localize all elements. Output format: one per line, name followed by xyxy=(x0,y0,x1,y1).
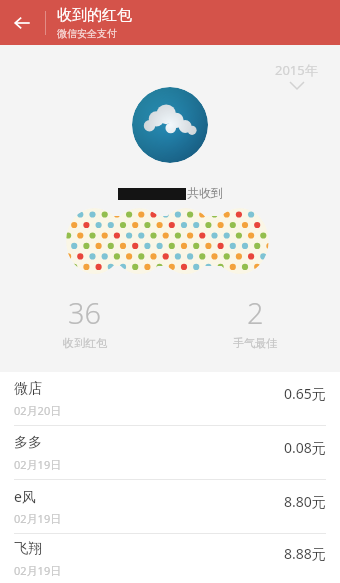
staticText: 02月19日 xyxy=(14,511,62,526)
button[interactable]: Back xyxy=(0,1,44,45)
staticText: 02月20日 xyxy=(14,403,62,418)
staticText: 2 xyxy=(247,293,264,332)
staticText: 36 xyxy=(68,293,102,332)
button[interactable]: 微店 xyxy=(0,372,340,425)
button[interactable]: 2015年 xyxy=(275,61,318,89)
staticText: 8.88元 xyxy=(284,544,326,563)
staticText: 0.65元 xyxy=(284,384,326,403)
staticText: 共收到 xyxy=(187,185,223,200)
staticText: 收到红包 xyxy=(63,336,107,350)
staticText: 收到的红包 xyxy=(57,6,132,25)
staticText: 0.08元 xyxy=(284,438,326,457)
button[interactable]: 多多 xyxy=(0,426,340,479)
button[interactable]: e风 xyxy=(0,480,340,533)
button[interactable]: 2 xyxy=(170,293,340,350)
staticText: 8.80元 xyxy=(284,492,326,511)
button[interactable]: 36 xyxy=(0,293,170,350)
staticText: e风 xyxy=(14,487,36,506)
staticText: 微信安全支付 xyxy=(57,27,117,40)
staticText: 02月19日 xyxy=(14,563,62,578)
button[interactable]: 飞翔 xyxy=(0,534,340,583)
staticText: 飞翔 xyxy=(14,540,42,558)
staticText: 02月19日 xyxy=(14,457,62,472)
staticText: 微店 xyxy=(14,380,42,398)
staticText: 手气最佳 xyxy=(233,336,277,350)
staticText: 2015年 xyxy=(275,61,318,79)
staticText: 多多 xyxy=(14,434,42,452)
